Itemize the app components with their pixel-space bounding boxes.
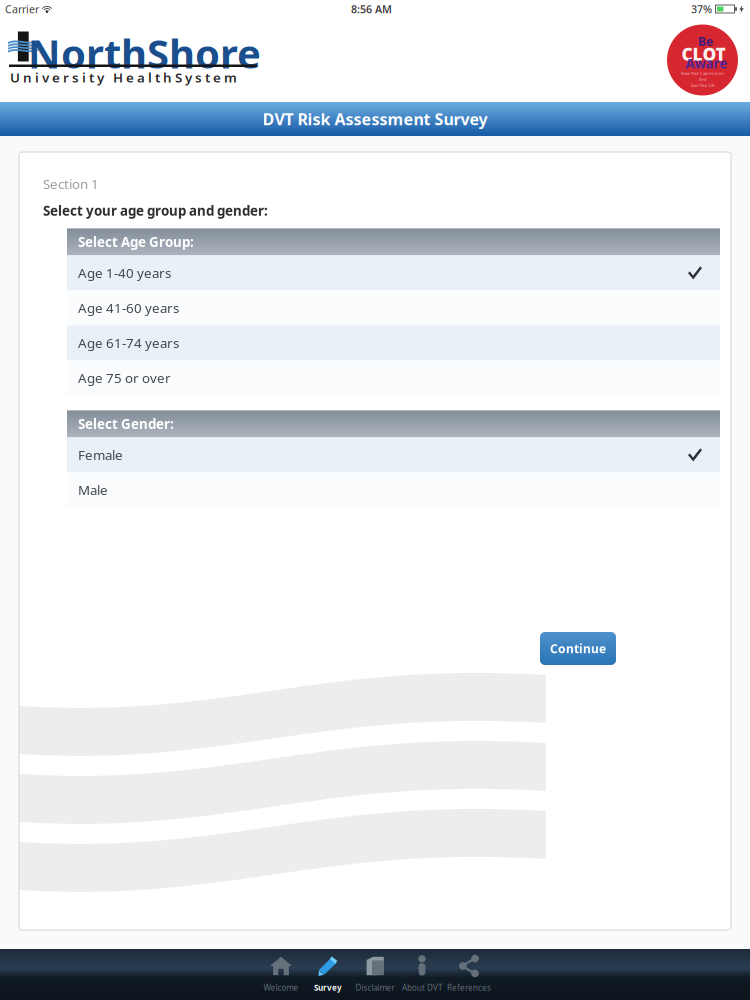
staticText: Know Your Caprini Score <box>681 70 724 76</box>
staticText: Be <box>698 33 713 49</box>
staticText: Select Gender: <box>78 415 174 433</box>
button[interactable]: Age 41-60 years <box>67 290 720 325</box>
button[interactable]: Survey <box>304 949 351 1000</box>
staticText: And <box>699 76 706 82</box>
staticText: Survey <box>314 982 342 993</box>
staticText: Age 41-60 years <box>78 299 179 317</box>
staticText: Disclaimer <box>355 982 394 993</box>
button[interactable]: Welcome <box>257 949 304 1000</box>
staticText: Continue <box>550 640 606 656</box>
staticText: CLOT <box>681 42 725 65</box>
staticText: About DVT <box>402 982 442 993</box>
staticText: Age 1-40 years <box>78 264 171 282</box>
staticText: Select your age group and gender: <box>43 202 268 219</box>
button[interactable]: Disclaimer <box>351 949 398 1000</box>
staticText: Carrier <box>5 2 39 16</box>
staticText: Female <box>78 446 123 464</box>
button[interactable]: References <box>445 949 492 1000</box>
staticText: Section 1 <box>43 175 99 193</box>
button[interactable]: Age 61-74 years <box>67 325 720 360</box>
button[interactable]: Male <box>67 472 720 507</box>
staticText: Select Age Group: <box>78 233 194 251</box>
staticText: 37% <box>691 2 712 16</box>
staticText: Welcome <box>263 982 298 993</box>
staticText: References <box>447 982 491 993</box>
staticText: Age 75 or over <box>78 369 171 387</box>
staticText: Male <box>78 481 108 499</box>
staticText: Age 61-74 years <box>78 334 179 352</box>
button[interactable]: About DVT <box>398 949 445 1000</box>
staticText: DVT Risk Assessment Survey <box>262 108 487 130</box>
button[interactable]: Age 1-40 years <box>67 255 720 290</box>
button[interactable]: Continue <box>540 632 616 665</box>
staticText: U n i v e r s i t y H e a l t h S y s t … <box>10 68 237 86</box>
staticText: NorthShore <box>28 26 261 80</box>
staticText: Aware <box>685 54 727 72</box>
staticText: Save Your Life <box>690 82 714 88</box>
button[interactable]: Age 75 or over <box>67 360 720 395</box>
staticText: 8:56 AM <box>351 2 392 16</box>
button[interactable]: Female <box>67 437 720 472</box>
